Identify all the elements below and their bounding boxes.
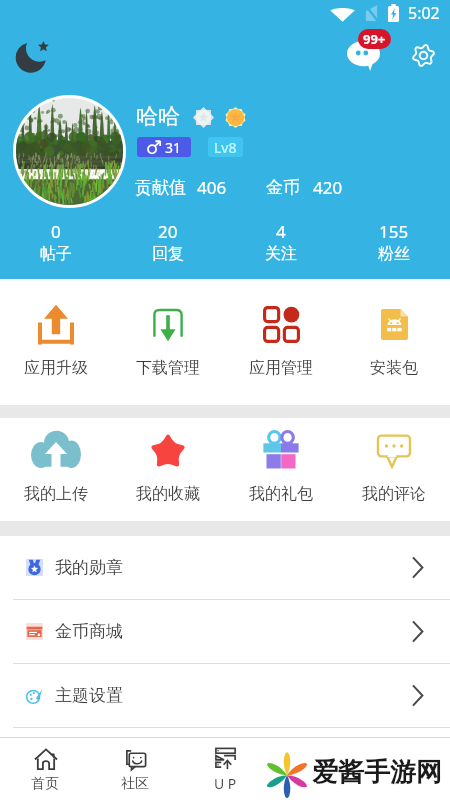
button[interactable]: 主题设置 [0,664,450,728]
button[interactable]: 我的评论 [337,418,450,521]
staticText: 社区 [121,775,149,793]
staticText: 福利 [301,775,329,793]
staticText: 420 [313,176,343,199]
button[interactable]: 社区 [90,738,180,800]
staticText: 20 [158,220,178,243]
staticText: 我的勋章 [55,557,123,578]
staticText: U P [214,774,237,793]
button[interactable]: 福利 [270,738,360,800]
staticText: 0 [51,220,61,243]
staticText: 应用升级 [24,358,88,378]
staticText: 爱酱手游网 [312,756,442,789]
staticText: 155 [379,220,409,243]
button[interactable]: Settings [412,44,435,67]
staticText: 贡献值 [135,177,186,198]
button[interactable]: 我的收藏 [112,418,224,521]
staticText: 406 [197,176,227,199]
button[interactable]: 金币商城 [0,600,450,664]
staticText: 粉丝 [378,244,410,264]
button[interactable]: 下载管理 [112,279,224,405]
staticText: 我的评论 [362,484,426,504]
staticText: 5:02 [408,2,440,24]
staticText: Lv8 [214,138,237,157]
staticText: 金币 [266,177,300,198]
staticText: 下载管理 [136,358,200,378]
staticText: 关注 [265,244,297,264]
button[interactable]: 我的勋章 [0,536,450,600]
button[interactable]: Night mode [14,34,56,76]
button[interactable]: 应用升级 [0,279,112,405]
button[interactable]: 安装包 [337,279,450,405]
button[interactable]: 我的礼包 [224,418,337,521]
button[interactable]: 0 [0,220,112,264]
button[interactable]: 首页 [0,738,90,800]
staticText: 回复 [152,244,184,264]
staticText: 我的上传 [24,484,88,504]
button[interactable]: 155 [337,220,450,264]
button[interactable]: U P [180,738,270,800]
staticText: 31 [165,138,182,157]
button[interactable]: 4 [224,220,337,264]
staticText: 应用管理 [249,358,313,378]
button[interactable]: 20 [112,220,224,264]
button[interactable]: 我的上传 [0,418,112,521]
staticText: 99+ [363,30,386,48]
staticText: 我的礼包 [249,484,313,504]
button[interactable]: 应用管理 [224,279,337,405]
staticText: 主题设置 [55,685,123,706]
button[interactable]: 我的 [360,738,450,800]
staticText: 我的 [391,775,419,793]
button[interactable]: Messages [345,27,397,79]
staticText: 金币商城 [55,621,123,642]
staticText: 安装包 [370,358,418,378]
staticText: 哈哈 [136,103,180,131]
staticText: 我的收藏 [136,484,200,504]
staticText: 帖子 [40,244,72,264]
staticText: 首页 [31,775,59,793]
staticText: 4 [276,220,286,243]
